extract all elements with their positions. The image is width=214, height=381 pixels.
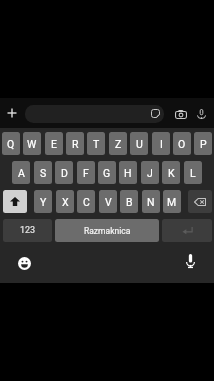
button[interactable]: Emoji	[16, 255, 32, 271]
button[interactable]: D	[55, 161, 73, 184]
button[interactable]: X	[56, 190, 74, 213]
staticText: B	[126, 196, 133, 208]
button[interactable]: C	[77, 190, 95, 213]
staticText: 123	[20, 225, 36, 236]
staticText: V	[105, 196, 112, 208]
button[interactable]: Q	[2, 132, 20, 155]
button[interactable]: Enter	[162, 219, 212, 242]
button[interactable]: I	[152, 132, 170, 155]
button[interactable]: Add attachment	[3, 104, 21, 122]
staticText: E	[51, 138, 57, 150]
staticText: W	[27, 138, 37, 150]
button[interactable]: Backspace	[188, 190, 212, 213]
staticText: X	[62, 196, 69, 208]
staticText: U	[136, 138, 143, 150]
button[interactable]: Voice message	[193, 109, 209, 119]
button[interactable]: U	[130, 132, 148, 155]
staticText: Z	[115, 138, 122, 150]
button[interactable]: A	[12, 161, 30, 184]
staticText: A	[18, 167, 25, 179]
button[interactable]: L	[184, 161, 202, 184]
button[interactable]: Y	[34, 190, 52, 213]
button[interactable]: Razmaknica	[55, 219, 159, 242]
button[interactable]: W	[23, 132, 41, 155]
button[interactable]: O	[173, 132, 191, 155]
staticText: L	[190, 167, 196, 179]
staticText: R	[72, 138, 79, 150]
button[interactable]: Camera	[173, 110, 189, 119]
button[interactable]: N	[142, 190, 160, 213]
staticText: N	[147, 196, 155, 208]
button[interactable]: 123	[3, 219, 52, 242]
button[interactable]: H	[119, 161, 137, 184]
button[interactable]: J	[141, 161, 159, 184]
button[interactable]: B	[120, 190, 138, 213]
staticText: K	[168, 167, 175, 179]
button[interactable]: E	[45, 132, 63, 155]
staticText: I	[160, 138, 163, 150]
button[interactable]: Voice input	[183, 254, 198, 268]
staticText: M	[167, 196, 177, 208]
button[interactable]: T	[87, 132, 105, 155]
staticText: Q	[7, 138, 15, 150]
button[interactable]: R	[66, 132, 84, 155]
button[interactable]: M	[163, 190, 181, 213]
button[interactable]: P	[194, 132, 212, 155]
staticText: Y	[40, 196, 47, 208]
button[interactable]: K	[162, 161, 180, 184]
staticText: Razmaknica	[84, 226, 131, 236]
staticText: H	[124, 167, 132, 179]
staticText: S	[40, 167, 47, 179]
button[interactable]: Shift	[3, 190, 27, 213]
button[interactable]: V	[99, 190, 117, 213]
button[interactable]: S	[34, 161, 52, 184]
staticText: P	[200, 138, 207, 150]
button[interactable]	[25, 105, 164, 123]
staticText: D	[61, 167, 68, 179]
staticText: T	[93, 138, 100, 150]
staticText: O	[178, 138, 186, 150]
staticText: F	[83, 167, 89, 179]
button[interactable]: Stickers	[148, 106, 162, 120]
button[interactable]: F	[77, 161, 95, 184]
staticText: G	[103, 167, 111, 179]
button[interactable]: Z	[109, 132, 127, 155]
button[interactable]: G	[98, 161, 116, 184]
staticText: J	[147, 167, 153, 179]
staticText: C	[83, 196, 90, 208]
